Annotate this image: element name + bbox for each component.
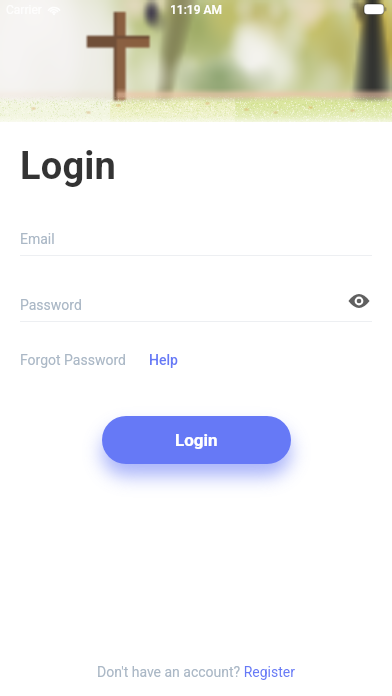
- button[interactable]: Don't have an account? Register: [97, 664, 295, 680]
- staticText: Carrier: [6, 3, 42, 17]
- button[interactable]: Forgot Password: [20, 352, 126, 368]
- button[interactable]: Login: [102, 416, 291, 464]
- button[interactable]: Show password: [346, 288, 372, 314]
- button[interactable]: Help: [149, 352, 178, 368]
- staticText: Login: [175, 430, 218, 450]
- staticText: Password: [20, 297, 346, 313]
- staticText: Email: [20, 231, 372, 247]
- staticText: Login: [20, 144, 117, 189]
- staticText: 11:19 AM: [170, 3, 222, 17]
